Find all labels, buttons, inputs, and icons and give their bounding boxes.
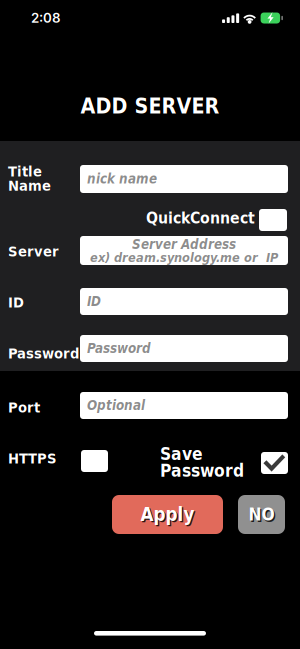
staticText: 2:08 (31, 10, 61, 26)
staticText: ADD SERVER (80, 94, 219, 118)
staticText: NO (248, 504, 274, 525)
staticText: Save (160, 444, 203, 464)
staticText: Password (8, 345, 79, 362)
staticText: Server (8, 243, 59, 260)
staticText: Password (160, 461, 244, 481)
button[interactable]: Apply (112, 495, 223, 534)
staticText: Password (87, 341, 151, 356)
staticText: Port (8, 399, 40, 416)
button[interactable]: HTTPS (81, 450, 108, 472)
staticText: Apply (142, 505, 196, 527)
staticText: nick name (87, 171, 157, 187)
staticText: Title (8, 163, 42, 180)
staticText: NO (250, 506, 276, 526)
staticText: ID (87, 294, 101, 309)
staticText: ex) dream.synology.me or IP (90, 250, 278, 265)
button[interactable]: NO (238, 495, 285, 534)
staticText: Name (8, 177, 51, 194)
button[interactable]: QuickConnect (259, 209, 287, 231)
staticText: Optional (87, 398, 145, 413)
staticText: Server Address (132, 237, 236, 252)
staticText: HTTPS (8, 450, 57, 467)
staticText: Apply (140, 504, 194, 525)
button[interactable]: Save Password (261, 452, 288, 474)
staticText: ID (8, 294, 24, 311)
staticText: QuickConnect (146, 209, 255, 227)
